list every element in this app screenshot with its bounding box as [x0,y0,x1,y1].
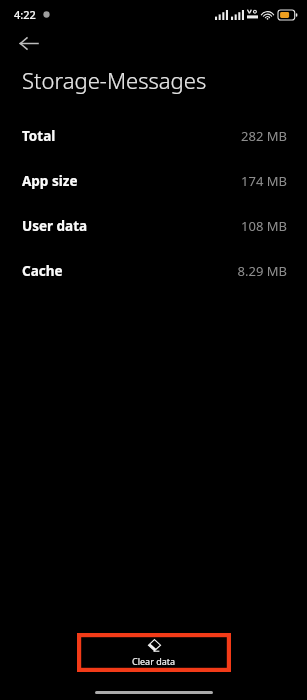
button[interactable]: Cache [0,248,307,293]
staticText: User data [22,217,88,235]
staticText: 108 MB [241,217,287,235]
staticText: Clear data [132,655,176,667]
staticText: 4:22 [14,7,36,22]
staticText: 282 MB [241,127,287,145]
button[interactable]: Back [11,28,45,58]
staticText: 8.29 MB [237,262,287,280]
button[interactable]: App size [0,158,307,203]
button[interactable]: Clear data [82,638,226,667]
staticText: 174 MB [241,172,287,190]
staticText: Storage-Messages [22,65,207,95]
staticText: Cache [22,262,63,280]
staticText: App size [22,172,78,190]
button[interactable]: User data [0,203,307,248]
button[interactable]: Total [0,113,307,158]
staticText: Total [22,127,56,145]
